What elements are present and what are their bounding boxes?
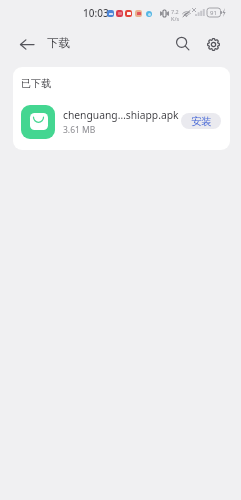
staticText: 7.2 bbox=[171, 8, 179, 15]
button[interactable]: Settings bbox=[196, 27, 230, 61]
staticText: chenguang…shiapp.apk bbox=[63, 108, 179, 122]
staticText: 91 bbox=[210, 9, 217, 17]
button[interactable]: Search bbox=[166, 27, 200, 61]
staticText: K/s bbox=[171, 15, 180, 22]
staticText: 10:03 bbox=[83, 6, 109, 20]
staticText: 已下载 bbox=[21, 77, 51, 90]
staticText: 安装 bbox=[191, 115, 212, 128]
button[interactable]: chenguang…shiapp.apk bbox=[13, 93, 230, 149]
button[interactable]: Back bbox=[10, 27, 44, 61]
staticText: 下载 bbox=[47, 36, 70, 50]
staticText: 3.61 MB bbox=[63, 124, 96, 136]
button[interactable]: 安装 bbox=[181, 113, 221, 129]
